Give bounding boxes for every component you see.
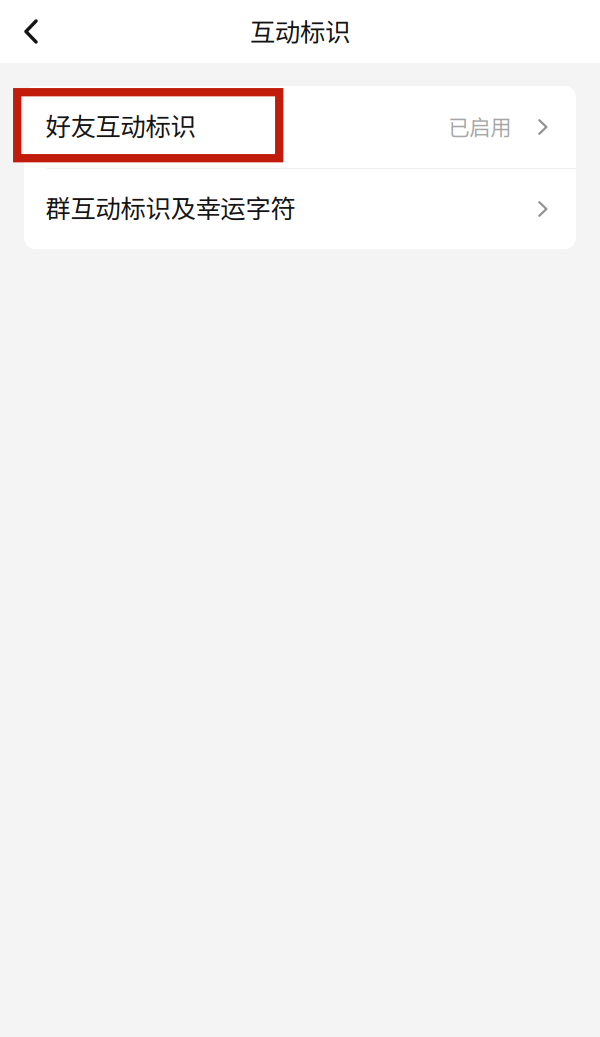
button[interactable]: Back <box>9 8 53 54</box>
staticText: 好友互动标识 <box>45 107 195 143</box>
staticText: 已启用 <box>448 111 511 141</box>
staticText: 互动标识 <box>250 12 350 49</box>
staticText: 群互动标识及幸运字符 <box>45 189 295 225</box>
button[interactable]: 群互动标识及幸运字符 <box>24 169 576 249</box>
button[interactable]: 好友互动标识 <box>24 86 576 168</box>
